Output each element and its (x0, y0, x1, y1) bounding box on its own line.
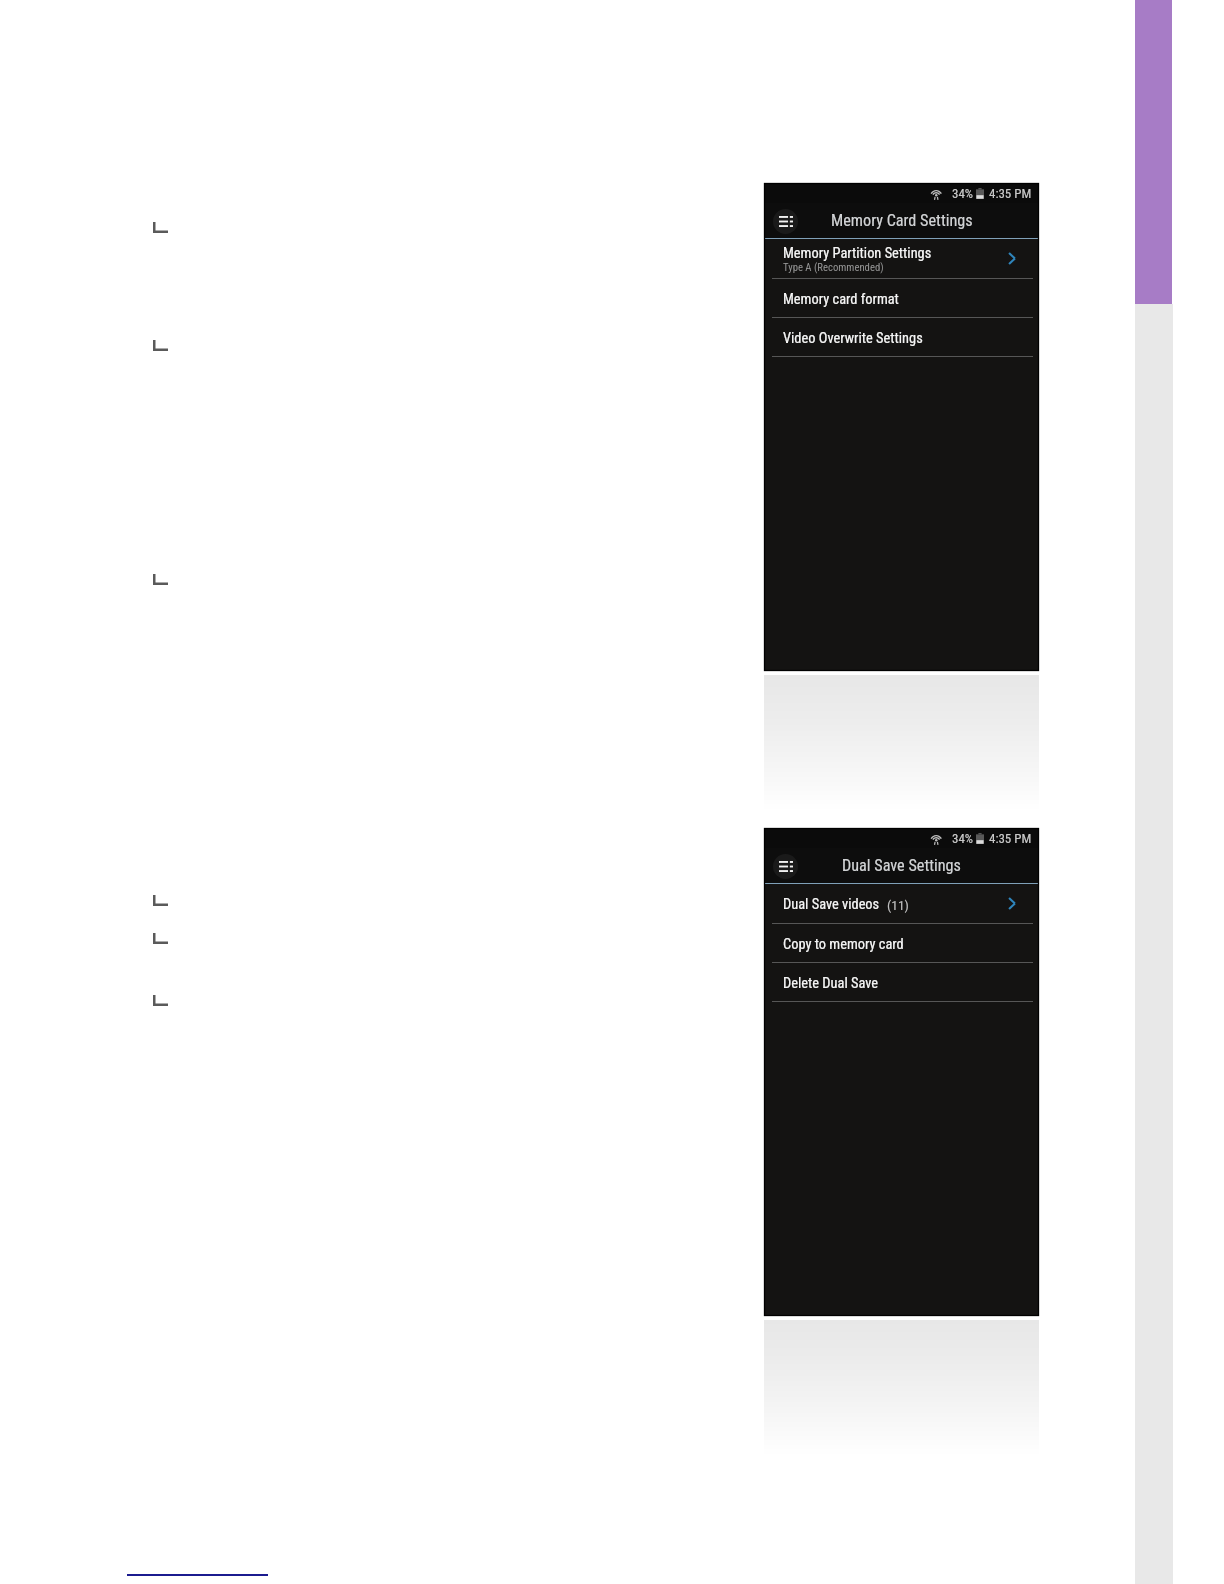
staticText: Type A (Recommended) (783, 261, 884, 274)
button[interactable]: Menu (773, 854, 798, 879)
button[interactable]: Delete Dual Save (764, 963, 1039, 1001)
staticText: 34% (952, 831, 974, 846)
staticText: 34% (952, 186, 974, 201)
staticText: Delete Dual Save (783, 975, 879, 992)
staticText: 4:35 PM (989, 831, 1032, 846)
staticText: Memory card format (783, 291, 899, 308)
staticText: Memory Partition Settings (783, 245, 932, 262)
staticText: Dual Save videos (783, 896, 880, 913)
button[interactable]: Memory Partition Settings (764, 239, 1039, 278)
staticText: 4:35 PM (989, 186, 1032, 201)
button[interactable]: Menu (773, 209, 798, 234)
button[interactable]: Memory card format (764, 279, 1039, 317)
button[interactable]: Video Overwrite Settings (764, 318, 1039, 356)
staticText: (11) (887, 897, 909, 913)
staticText: Dual Save Settings (842, 856, 961, 875)
staticText: Copy to memory card (783, 936, 904, 953)
staticText: Video Overwrite Settings (783, 330, 923, 347)
button[interactable]: Dual Save videos (764, 884, 1039, 923)
button[interactable]: Copy to memory card (764, 924, 1039, 962)
staticText: Memory Card Settings (831, 211, 973, 230)
